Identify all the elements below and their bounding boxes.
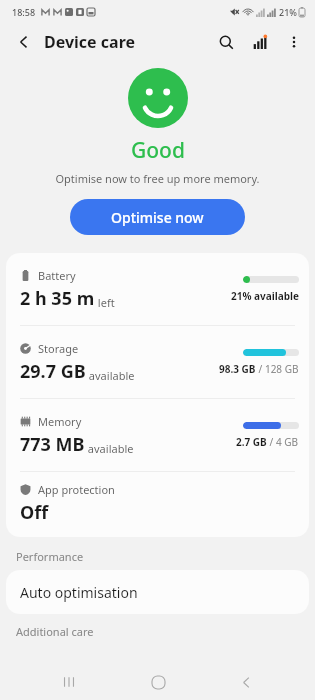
button[interactable]: Auto optimisation <box>6 570 309 614</box>
button[interactable]: Recent apps <box>49 664 89 700</box>
staticText: Optimise now to free up more memory. <box>0 171 315 186</box>
button[interactable]: Usage statistics <box>245 27 275 57</box>
button[interactable]: App protection <box>6 472 309 537</box>
button[interactable]: Back <box>8 26 40 58</box>
button[interactable]: More options <box>279 27 309 57</box>
staticText: 21% <box>279 6 297 18</box>
staticText: Good <box>131 136 185 165</box>
staticText: 98.3 GB <box>219 362 256 376</box>
staticText: Performance <box>16 549 84 564</box>
staticText: 21% available <box>231 289 299 303</box>
staticText: Additional care <box>16 624 94 639</box>
staticText: 18:58 <box>12 6 36 18</box>
staticText: Storage <box>38 341 79 356</box>
staticText: / 4 GB <box>267 435 299 449</box>
button[interactable]: Storage <box>6 326 309 398</box>
staticText: 773 MB <box>20 432 85 457</box>
button[interactable]: Optimise now <box>70 199 245 235</box>
staticText: Battery <box>38 268 76 283</box>
staticText: 2.7 GB <box>236 435 267 449</box>
button[interactable]: Home <box>138 664 178 700</box>
staticText: Optimise now <box>111 208 204 227</box>
button[interactable]: Search <box>211 27 241 57</box>
staticText: Off <box>20 500 49 525</box>
staticText: 29.7 GB <box>20 359 86 384</box>
staticText: Memory <box>38 414 82 429</box>
staticText: / 128 GB <box>256 362 299 376</box>
staticText: 2 h 35 m <box>20 286 95 311</box>
staticText: left <box>95 295 115 310</box>
button[interactable]: Battery <box>6 253 309 325</box>
button[interactable]: Back <box>226 664 266 700</box>
staticText: App protection <box>38 482 115 497</box>
staticText: available <box>85 441 134 456</box>
staticText: Device care <box>44 31 136 53</box>
staticText: Auto optimisation <box>20 583 138 602</box>
staticText: available <box>86 368 135 383</box>
button[interactable]: Memory <box>6 399 309 471</box>
